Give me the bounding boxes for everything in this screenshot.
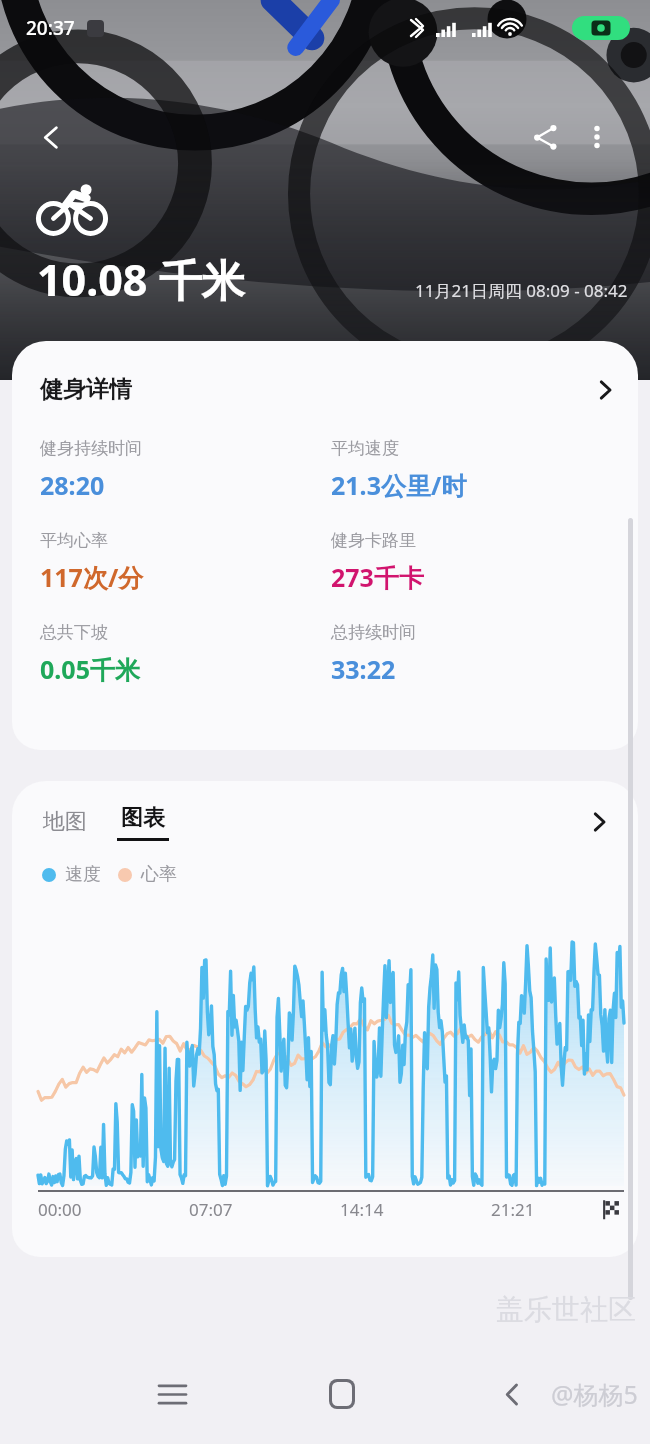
- staticText: 健身卡路里: [331, 530, 416, 551]
- button[interactable]: 地图: [40, 800, 90, 844]
- button[interactable]: 健身持续时间: [40, 438, 331, 530]
- staticText: 10.08 千米: [37, 250, 245, 309]
- staticText: 速度: [65, 863, 101, 886]
- staticText: 273千卡: [331, 560, 424, 594]
- staticText: 地图: [43, 808, 87, 836]
- staticText: 11月21日周四 08:09 - 08:42: [415, 279, 628, 302]
- button[interactable]: 总持续时间: [331, 622, 622, 714]
- staticText: 07:07: [189, 1198, 233, 1221]
- button[interactable]: Back: [22, 108, 80, 166]
- button[interactable]: 图表: [114, 800, 172, 845]
- staticText: 平均速度: [331, 438, 399, 459]
- button[interactable]: Open chart details: [582, 805, 616, 839]
- button[interactable]: 平均速度: [331, 438, 622, 530]
- button[interactable]: 健身卡路里: [331, 530, 622, 622]
- staticText: 心率: [141, 863, 177, 886]
- staticText: 健身持续时间: [40, 438, 142, 459]
- staticText: 盖乐世社区: [496, 1292, 636, 1327]
- button[interactable]: Recent apps: [141, 1363, 203, 1425]
- staticText: 21:21: [491, 1198, 535, 1221]
- staticText: 健身详情: [40, 375, 132, 404]
- button[interactable]: Share: [517, 109, 573, 165]
- staticText: @杨杨5: [551, 1377, 638, 1411]
- button[interactable]: More options: [569, 109, 625, 165]
- button[interactable]: 总共下坡: [40, 622, 331, 714]
- staticText: 28:20: [40, 468, 105, 502]
- button[interactable]: Home: [311, 1363, 373, 1425]
- staticText: 117次/分: [40, 560, 144, 594]
- staticText: 00:00: [38, 1198, 82, 1221]
- staticText: 33:22: [331, 652, 396, 686]
- staticText: 总持续时间: [331, 622, 416, 643]
- button[interactable]: 平均心率: [40, 530, 331, 622]
- button[interactable]: Back: [481, 1363, 543, 1425]
- staticText: 21.3公里/时: [331, 468, 467, 502]
- staticText: 总共下坡: [40, 622, 108, 643]
- staticText: 14:14: [340, 1198, 384, 1221]
- staticText: 平均心率: [40, 530, 108, 551]
- button[interactable]: 健身详情: [12, 341, 638, 438]
- staticText: 0.05千米: [40, 652, 140, 686]
- staticText: 20:37: [26, 15, 75, 41]
- staticText: 图表: [121, 804, 165, 832]
